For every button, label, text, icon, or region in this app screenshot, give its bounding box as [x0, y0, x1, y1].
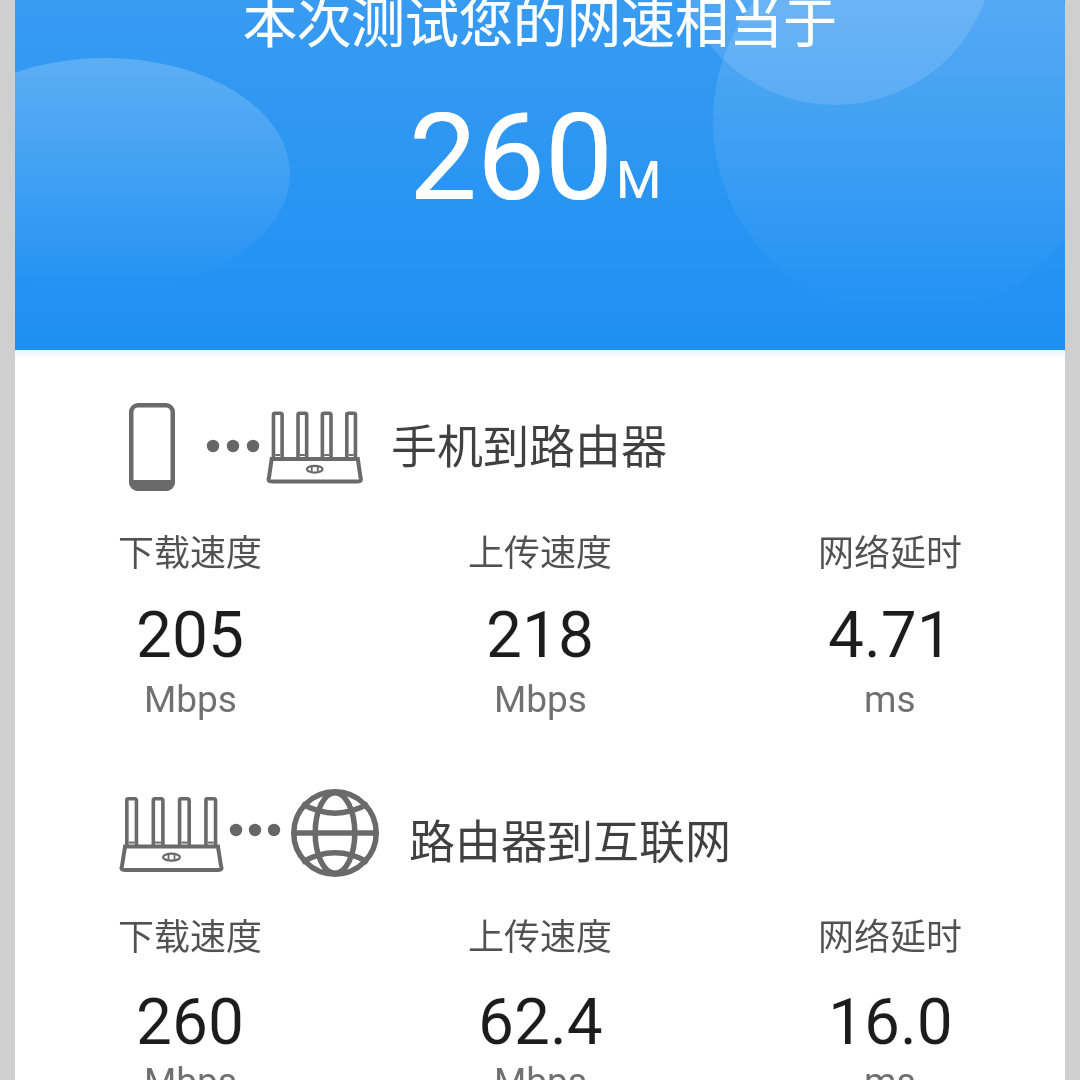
staticText: ms	[864, 1060, 916, 1080]
button[interactable]	[15, 0, 1065, 350]
staticText: 上传速度	[468, 908, 613, 960]
staticText: Mbps	[494, 678, 587, 721]
staticText: 260	[136, 985, 244, 1060]
staticText: Mbps	[144, 678, 237, 721]
staticText: 下载速度	[118, 524, 263, 576]
staticText: 4.71	[828, 598, 953, 673]
staticText: M	[616, 150, 662, 211]
staticText: 260	[409, 87, 614, 229]
staticText: 网络延时	[818, 524, 963, 576]
staticText: 手机到路由器	[391, 410, 667, 477]
staticText: Mbps	[494, 1060, 587, 1080]
staticText: 205	[136, 598, 244, 673]
staticText: 下载速度	[118, 908, 263, 960]
staticText: 本次测试您的网速相当于	[243, 0, 837, 58]
staticText: 上传速度	[468, 524, 613, 576]
staticText: 16.0	[828, 985, 953, 1060]
staticText: ms	[864, 678, 916, 721]
staticText: 62.4	[478, 985, 603, 1060]
staticText: 网络延时	[818, 908, 963, 960]
staticText: Mbps	[144, 1060, 237, 1080]
staticText: 218	[486, 598, 594, 673]
staticText: 路由器到互联网	[409, 805, 731, 872]
